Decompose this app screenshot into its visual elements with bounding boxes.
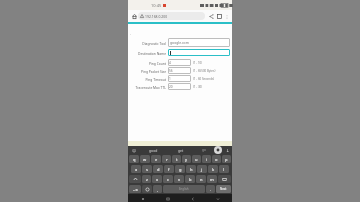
button[interactable]: .: [206, 185, 215, 193]
staticText: q: [133, 157, 136, 162]
button[interactable]: Back: [189, 195, 196, 202]
button[interactable]: m: [207, 175, 217, 183]
staticText: c: [167, 177, 169, 182]
staticText: z: [146, 177, 148, 182]
staticText: Destination Name: [137, 51, 166, 55]
button[interactable]: Next: [216, 185, 231, 193]
staticText: 56: [169, 69, 173, 73]
staticText: d: [157, 167, 160, 172]
staticText: y: [185, 157, 188, 162]
staticText: b: [189, 177, 192, 182]
staticText: g: [179, 167, 182, 172]
staticText: t: [176, 157, 178, 162]
staticText: ?1冊: [133, 188, 138, 191]
staticText: x: [156, 177, 159, 182]
button[interactable]: h: [186, 165, 196, 173]
button[interactable]: More options: [223, 13, 230, 20]
button[interactable]: q: [129, 155, 139, 163]
staticText: w: [143, 157, 147, 162]
button[interactable]: Language: [142, 185, 152, 193]
staticText: k: [212, 167, 215, 172]
button[interactable]: Home: [130, 12, 138, 20]
button[interactable]: [168, 49, 230, 56]
button[interactable]: 1: [168, 75, 191, 82]
button[interactable]: Home: [164, 195, 171, 202]
staticText: good: [149, 148, 158, 153]
button[interactable]: a: [131, 165, 141, 173]
staticText: (1 - 60 Seconds): [193, 77, 215, 81]
button[interactable]: v: [174, 175, 184, 183]
button[interactable]: Settings: [224, 146, 231, 154]
button[interactable]: ,: [153, 185, 162, 193]
button[interactable]: t: [172, 155, 181, 163]
staticText: Ping Count: [148, 61, 166, 65]
button[interactable]: Share: [207, 12, 215, 20]
button[interactable]: google.com: [168, 38, 230, 47]
button[interactable]: Hide keyboard: [214, 195, 221, 202]
staticText: 4: [169, 61, 171, 65]
staticText: v: [178, 177, 181, 182]
button[interactable]: b: [185, 175, 195, 183]
staticText: 192.168.0.200: [145, 14, 168, 19]
staticText: Diagnostic Tool: [142, 41, 166, 45]
button[interactable]: z: [142, 175, 151, 183]
staticText: a: [135, 167, 138, 172]
button[interactable]: f: [164, 165, 174, 173]
button[interactable]: s: [142, 165, 152, 173]
button[interactable]: k: [208, 165, 218, 173]
staticText: google.com: [170, 40, 189, 45]
button[interactable]: n: [196, 175, 206, 183]
staticText: Ping Timeout: [145, 77, 166, 81]
button[interactable]: o: [212, 155, 221, 163]
button[interactable]: Space: [163, 185, 205, 193]
staticText: h: [190, 167, 193, 172]
button[interactable]: 56: [168, 67, 191, 74]
button[interactable]: c: [163, 175, 173, 183]
staticText: m: [210, 177, 214, 182]
staticText: e: [155, 157, 158, 162]
staticText: English: [179, 187, 189, 191]
button[interactable]: g: [175, 165, 185, 173]
staticText: p: [225, 157, 228, 162]
staticText: 20: [169, 85, 173, 89]
button[interactable]: u: [192, 155, 201, 163]
staticText: ↓: [226, 148, 230, 153]
button[interactable]: 192.168.0.200: [138, 12, 205, 20]
button[interactable]: Recents: [139, 195, 146, 202]
button[interactable]: 4: [168, 59, 191, 66]
button[interactable]: i: [202, 155, 211, 163]
staticText: s: [146, 167, 148, 172]
button[interactable]: j: [197, 165, 207, 173]
button[interactable]: l: [219, 165, 229, 173]
staticText: Ping Packet Size: [141, 69, 166, 73]
staticText: l: [223, 167, 225, 172]
button[interactable]: e: [151, 155, 161, 163]
staticText: (1 - 65500 Bytes): [193, 69, 216, 73]
button[interactable]: go: [195, 146, 212, 154]
button[interactable]: Backspace: [218, 175, 231, 183]
staticText: (1 - 30): [193, 85, 203, 89]
staticText: go: [202, 148, 206, 152]
button[interactable]: 20: [168, 83, 191, 90]
staticText: u: [195, 157, 198, 162]
button[interactable]: Emoji: [129, 146, 139, 154]
staticText: get: [178, 148, 184, 153]
button[interactable]: ?1冊: [129, 185, 141, 193]
button[interactable]: Tabs: [215, 12, 223, 20]
button[interactable]: Shift: [129, 175, 141, 183]
staticText: n: [200, 177, 203, 182]
button[interactable]: w: [140, 155, 150, 163]
button[interactable]: Voice input: [212, 146, 224, 154]
button[interactable]: good: [139, 146, 167, 154]
staticText: ,: [157, 187, 158, 192]
button[interactable]: r: [162, 155, 171, 163]
staticText: ☺: [132, 148, 137, 153]
button[interactable]: x: [152, 175, 162, 183]
button[interactable]: get: [167, 146, 195, 154]
staticText: 1: [169, 77, 171, 81]
staticText: ·: [130, 32, 132, 37]
button[interactable]: d: [153, 165, 163, 173]
button[interactable]: y: [182, 155, 191, 163]
staticText: i: [206, 157, 208, 162]
button[interactable]: p: [222, 155, 231, 163]
